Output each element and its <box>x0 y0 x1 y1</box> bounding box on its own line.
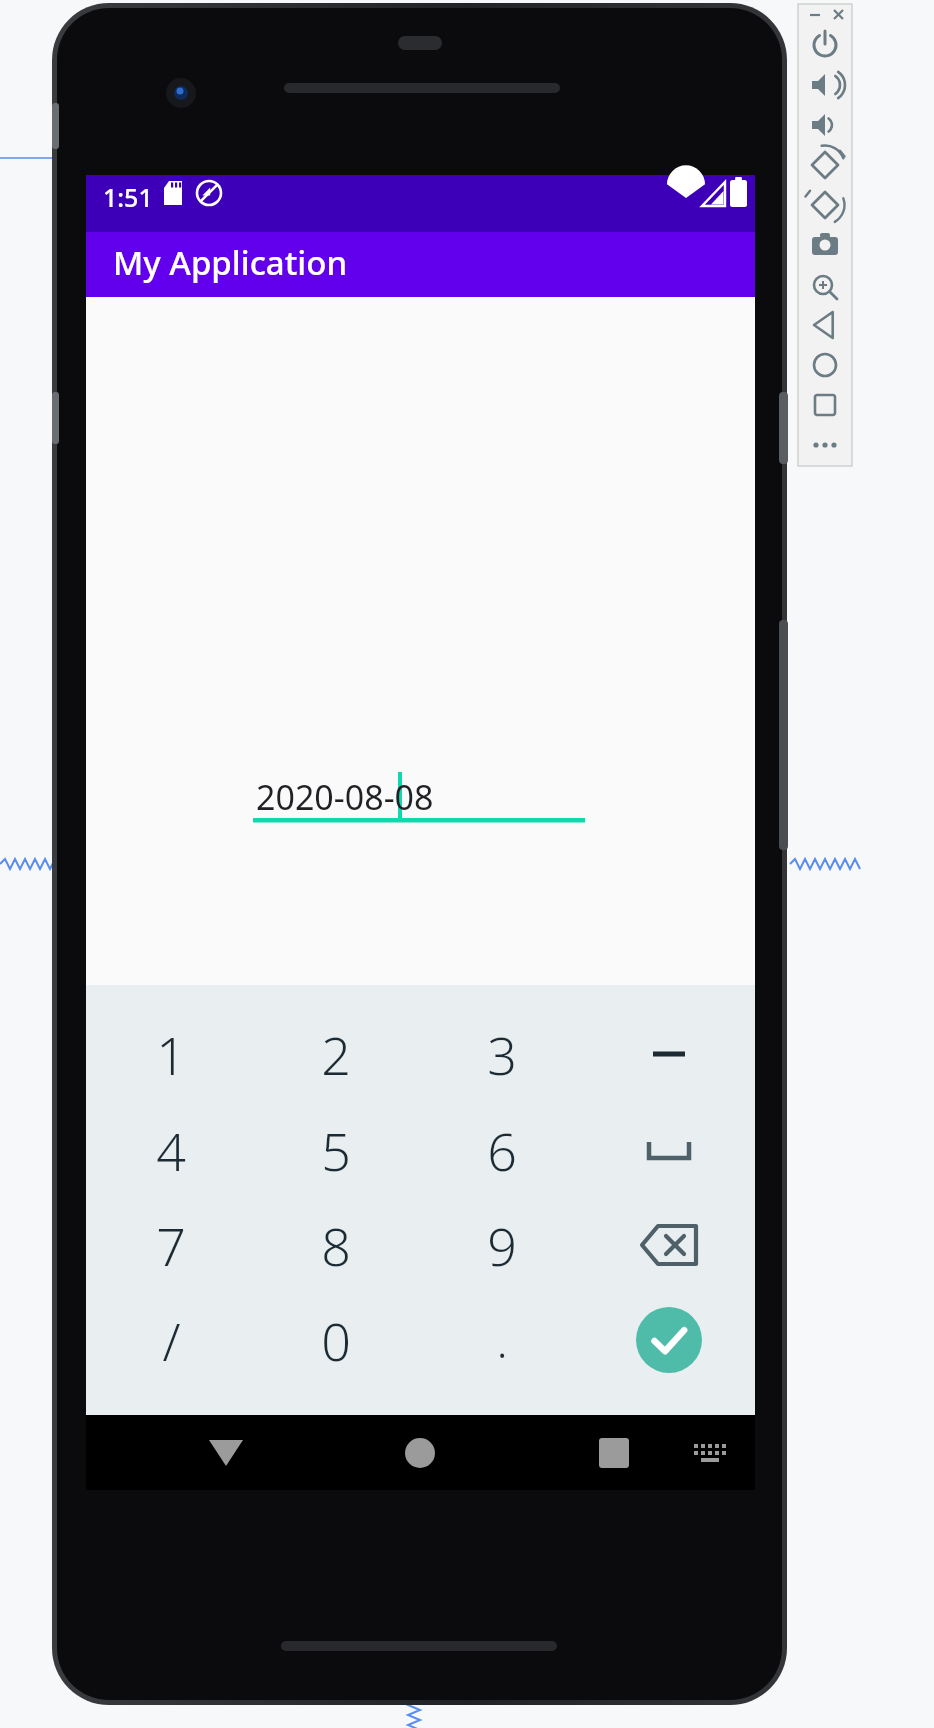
staticText: 6 <box>487 1115 517 1186</box>
button[interactable]: 6 <box>452 1112 552 1188</box>
button[interactable]: 9 <box>452 1207 552 1283</box>
staticText: 2 <box>321 1019 351 1090</box>
staticText: 1 <box>156 1019 186 1090</box>
button[interactable]: 4 <box>121 1112 221 1188</box>
button[interactable]: 1 <box>121 1016 221 1092</box>
staticText: 8 <box>321 1210 351 1281</box>
staticText: 2020-08-08 <box>256 774 434 820</box>
staticText: 1:51 <box>103 180 153 214</box>
staticText: My Application <box>113 240 348 285</box>
button[interactable]: / <box>121 1302 221 1378</box>
button[interactable]: Switch keyboard <box>676 1420 746 1486</box>
button[interactable]: Home <box>370 1420 470 1486</box>
button[interactable]: 3 <box>452 1016 552 1092</box>
button[interactable]: Backspace <box>619 1207 719 1283</box>
staticText: 0 <box>321 1305 351 1376</box>
staticText: / <box>162 1305 181 1376</box>
button[interactable]: Minus <box>619 1016 719 1092</box>
button[interactable]: Space <box>619 1112 719 1188</box>
staticText: 7 <box>156 1210 186 1281</box>
button[interactable]: Date input field <box>253 762 585 824</box>
button[interactable]: 5 <box>286 1112 386 1188</box>
staticText: 9 <box>487 1210 517 1281</box>
staticText: 4 <box>156 1115 186 1186</box>
staticText: 5 <box>321 1115 351 1186</box>
button[interactable]: 0 <box>286 1302 386 1378</box>
button[interactable]: 8 <box>286 1207 386 1283</box>
button[interactable]: Confirm <box>619 1302 719 1378</box>
button[interactable]: 7 <box>121 1207 221 1283</box>
staticText: 3 <box>487 1019 517 1090</box>
button[interactable]: . <box>452 1302 552 1378</box>
button[interactable]: 2 <box>286 1016 386 1092</box>
button[interactable]: Recent apps <box>564 1420 664 1486</box>
button[interactable]: Back <box>176 1420 276 1486</box>
staticText: . <box>496 1309 508 1372</box>
